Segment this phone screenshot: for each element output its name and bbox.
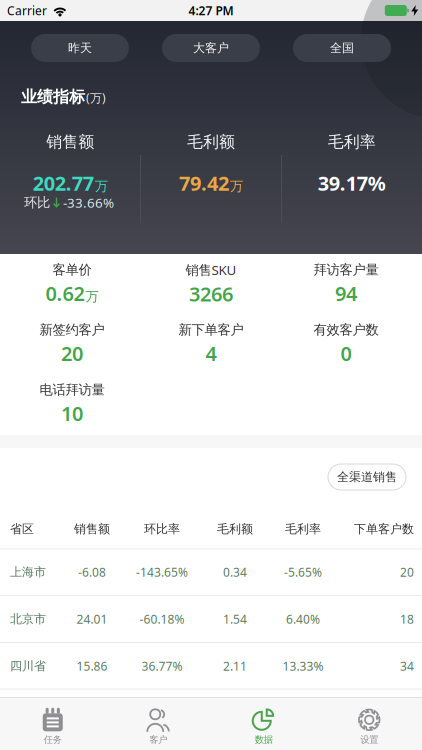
staticText: 94 <box>335 280 357 306</box>
staticText: 万 <box>85 288 98 305</box>
staticText: 销售额 <box>74 522 110 536</box>
staticText: 全渠道销售 <box>337 470 397 484</box>
staticText: 24.01 <box>76 611 107 627</box>
staticText: Carrier <box>7 2 47 18</box>
staticText: 万 <box>230 178 243 194</box>
staticText: 18 <box>400 611 414 627</box>
staticText: 四川省 <box>10 659 46 673</box>
staticText: -33.66% <box>63 194 114 211</box>
staticText: 毛利额 <box>187 132 235 152</box>
staticText: 0.62 <box>45 280 84 306</box>
staticText: 万 <box>95 178 108 194</box>
button[interactable]: 昨天 <box>31 34 129 62</box>
staticText: 电话拜访量 <box>39 381 104 398</box>
button[interactable]: 大客户 <box>162 34 260 62</box>
staticText: 昨天 <box>68 41 92 55</box>
staticText: 毛利率 <box>285 522 321 536</box>
staticText: 数据 <box>255 734 273 745</box>
staticText: (万) <box>86 90 106 106</box>
staticText: 13.33% <box>282 658 323 674</box>
button[interactable]: 全渠道销售 <box>328 464 406 490</box>
staticText: 4 <box>205 340 216 366</box>
staticText: 客单价 <box>52 261 91 278</box>
staticText: 任务 <box>44 734 62 745</box>
button[interactable]: 全国 <box>293 34 391 62</box>
staticText: 10 <box>61 400 83 426</box>
button[interactable]: 设置 <box>316 698 422 750</box>
staticText: 全国 <box>330 41 354 55</box>
staticText: 20 <box>61 340 83 366</box>
staticText: 39.17% <box>318 170 386 196</box>
staticText: 毛利率 <box>328 132 376 152</box>
staticText: 0 <box>340 340 351 366</box>
staticText: 新下单客户 <box>178 321 243 338</box>
staticText: 15.86 <box>76 658 107 674</box>
staticText: 业绩指标 <box>21 87 85 107</box>
staticText: 客户 <box>149 734 167 745</box>
staticText: -60.18% <box>139 611 184 627</box>
staticText: 4:27 PM <box>188 2 233 18</box>
staticText: -143.65% <box>136 564 188 580</box>
staticText: 销售SKU <box>185 261 236 279</box>
staticText: 大客户 <box>193 41 229 55</box>
button[interactable]: 任务 <box>0 698 105 750</box>
staticText: 79.42 <box>179 170 229 196</box>
staticText: 34 <box>400 658 414 674</box>
staticText: 省区 <box>10 522 34 536</box>
staticText: -6.08 <box>78 564 106 580</box>
staticText: 设置 <box>360 734 378 745</box>
staticText: 有效客户数 <box>313 321 378 338</box>
staticText: 20 <box>400 564 414 580</box>
staticText: 环比率 <box>144 522 180 536</box>
staticText: 毛利额 <box>217 522 253 536</box>
staticText: 拜访客户量 <box>313 261 378 278</box>
staticText: 销售额 <box>46 132 94 152</box>
staticText: 新签约客户 <box>39 321 104 338</box>
staticText: 6.40% <box>286 611 320 627</box>
button[interactable]: 客户 <box>105 698 211 750</box>
staticText: 3266 <box>189 281 233 307</box>
staticText: 2.11 <box>223 658 247 674</box>
staticText: 环比 <box>24 194 50 211</box>
button[interactable]: 数据 <box>211 698 316 750</box>
staticText: 1.54 <box>223 611 247 627</box>
staticText: 北京市 <box>10 612 46 626</box>
staticText: 上海市 <box>10 565 46 579</box>
staticText: 下单客户数 <box>354 522 414 536</box>
staticText: 0.34 <box>223 564 247 580</box>
staticText: 36.77% <box>141 658 182 674</box>
staticText: 202.77 <box>33 170 94 196</box>
staticText: -5.65% <box>284 564 322 580</box>
